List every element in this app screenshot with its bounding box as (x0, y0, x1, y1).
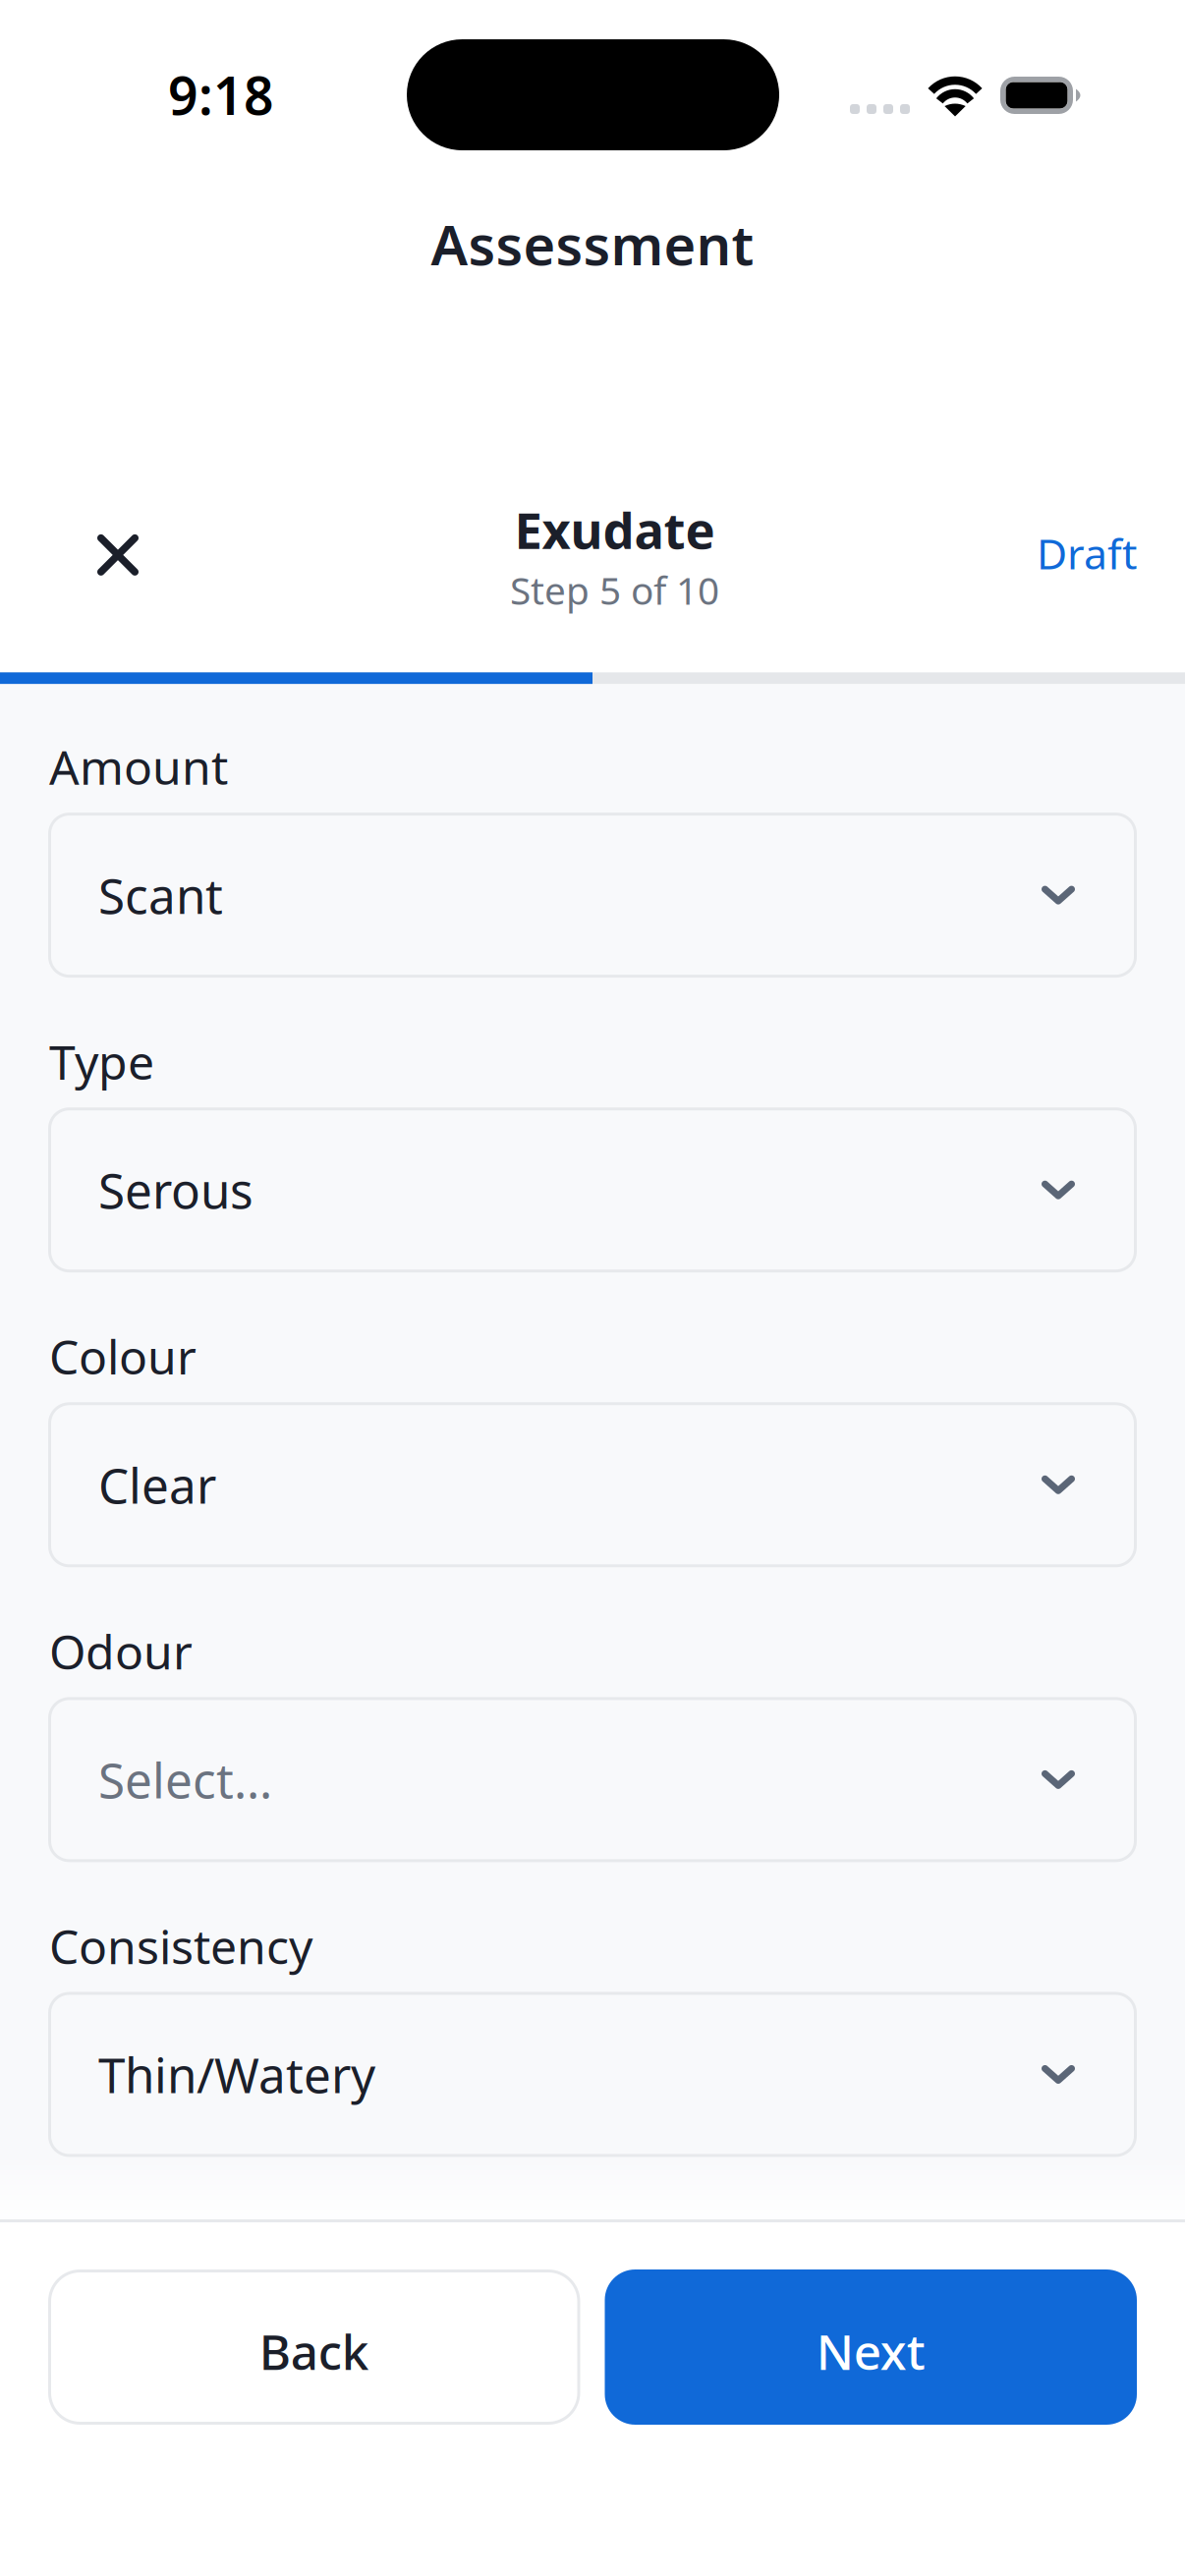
staticText: 9:18 (168, 60, 274, 129)
staticText: Exudate (514, 497, 715, 563)
button[interactable]: Next (605, 2269, 1137, 2425)
button[interactable]: Back (48, 2269, 580, 2425)
staticText: Back (259, 2319, 369, 2383)
staticText: Clear (98, 1453, 216, 1517)
staticText: Draft (1037, 525, 1137, 581)
staticText: Next (816, 2319, 925, 2383)
staticText: Odour (49, 1620, 193, 1682)
staticText: Scant (98, 863, 223, 927)
button[interactable]: Scant (48, 813, 1137, 978)
staticText: Thin/Watery (98, 2042, 375, 2107)
staticText: Consistency (49, 1915, 312, 1977)
staticText: Colour (49, 1325, 197, 1388)
staticText: Step 5 of 10 (510, 565, 719, 615)
button[interactable]: Serous (48, 1107, 1137, 1272)
button[interactable]: Thin/Watery (48, 1992, 1137, 2157)
staticText: Amount (49, 735, 228, 798)
button[interactable]: Close (97, 497, 220, 615)
button[interactable]: Clear (48, 1402, 1137, 1567)
staticText: Assessment (431, 207, 754, 280)
button[interactable]: Draft (1009, 497, 1137, 615)
staticText: Type (49, 1030, 154, 1093)
staticText: Select... (98, 1747, 272, 1812)
staticText: Serous (98, 1158, 254, 1222)
button[interactable]: Select... (48, 1697, 1137, 1862)
